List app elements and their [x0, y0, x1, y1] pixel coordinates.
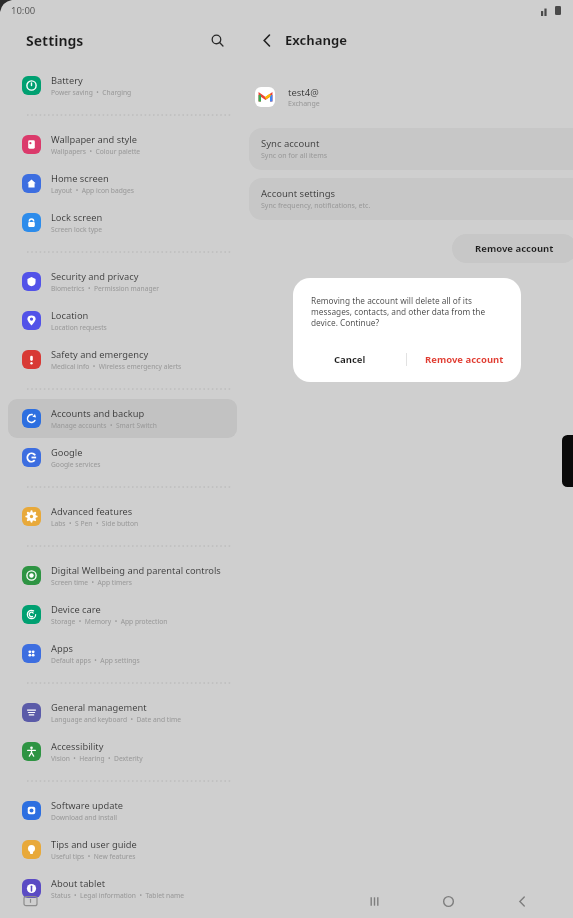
staticText: Download and install — [51, 813, 117, 822]
button[interactable]: test4@ — [255, 80, 573, 114]
staticText: Remove account — [425, 353, 504, 366]
staticText: Home screen — [51, 172, 109, 185]
button[interactable]: Remove account — [452, 234, 573, 263]
button[interactable]: Search — [201, 24, 233, 56]
staticText: Safety and emergency — [51, 348, 149, 361]
staticText: Location requests — [51, 323, 107, 332]
staticText: Sync frequency, notifications, etc. — [261, 201, 371, 211]
staticText: About tablet — [51, 877, 106, 890]
staticText: General management — [51, 701, 147, 714]
staticText: Cancel — [334, 353, 366, 366]
staticText: Device care — [51, 603, 101, 616]
button[interactable]: About tablet — [8, 869, 237, 908]
button[interactable]: Location — [8, 301, 237, 340]
staticText: Useful tips • New features — [51, 852, 136, 861]
staticText: Exchange — [285, 31, 347, 49]
staticText: Accessibility — [51, 740, 104, 753]
button[interactable]: General management — [8, 693, 237, 732]
staticText: Accounts and backup — [51, 407, 145, 420]
button[interactable]: Google — [8, 438, 237, 477]
staticText: Remove account — [475, 242, 554, 255]
button[interactable]: Security and privacy — [8, 262, 237, 301]
staticText: Labs • S Pen • Side button — [51, 519, 139, 528]
staticText: Account settings — [261, 187, 336, 200]
other: Edge panel — [562, 435, 573, 487]
staticText: Layout • App icon badges — [51, 186, 134, 195]
button[interactable]: Digital Wellbeing and parental controls — [8, 556, 237, 595]
button[interactable]: Back — [253, 26, 281, 54]
button[interactable]: Account settings — [249, 178, 573, 220]
staticText: Settings — [26, 31, 84, 50]
staticText: Location — [51, 309, 89, 322]
staticText: Exchange — [288, 99, 320, 109]
staticText: Status • Legal information • Tablet name — [51, 891, 185, 900]
staticText: Sync account — [261, 137, 320, 150]
staticText: Screen time • App timers — [51, 578, 132, 587]
button[interactable]: Safety and emergency — [8, 340, 237, 379]
staticText: Digital Wellbeing and parental controls — [51, 564, 221, 577]
staticText: Google services — [51, 460, 101, 469]
staticText: Wallpaper and style — [51, 133, 137, 146]
staticText: Language and keyboard • Date and time — [51, 715, 181, 724]
button[interactable]: Lock screen — [8, 203, 237, 242]
button[interactable]: Wallpaper and style — [8, 125, 237, 164]
staticText: Removing the account will delete all of … — [311, 295, 505, 328]
button[interactable]: Advanced features — [8, 497, 237, 536]
staticText: Advanced features — [51, 505, 133, 518]
staticText: Google — [51, 446, 83, 459]
staticText: Medical info • Wireless emergency alerts — [51, 362, 182, 371]
button[interactable]: Sync account — [249, 128, 573, 170]
button[interactable]: Remove account — [407, 342, 521, 376]
staticText: Screen lock type — [51, 225, 102, 234]
staticText: Manage accounts • Smart Switch — [51, 421, 157, 430]
button[interactable]: Home screen — [8, 164, 237, 203]
staticText: Lock screen — [51, 211, 103, 224]
staticText: Apps — [51, 642, 73, 655]
button[interactable]: Apps — [8, 634, 237, 673]
button[interactable]: Accounts and backup — [8, 399, 237, 438]
button[interactable]: Software update — [8, 791, 237, 830]
staticText: Battery — [51, 74, 83, 87]
button[interactable]: Back — [485, 884, 559, 918]
button[interactable]: Accessibility — [8, 732, 237, 771]
staticText: Power saving • Charging — [51, 88, 132, 97]
button[interactable]: Screenshot — [0, 884, 60, 918]
staticText: Tips and user guide — [51, 838, 137, 851]
staticText: Security and privacy — [51, 270, 139, 283]
staticText: Storage • Memory • App protection — [51, 617, 168, 626]
staticText: 10:00 — [11, 4, 36, 17]
button[interactable]: Home — [411, 884, 485, 918]
button[interactable]: Recents — [337, 884, 411, 918]
staticText: Vision • Hearing • Dexterity — [51, 754, 143, 763]
staticText: Biometrics • Permission manager — [51, 284, 160, 293]
staticText: Default apps • App settings — [51, 656, 140, 665]
staticText: Sync on for all items — [261, 151, 328, 161]
staticText: test4@ — [288, 86, 319, 99]
button[interactable]: Battery — [8, 66, 237, 105]
button[interactable]: Cancel — [293, 342, 406, 376]
staticText: Software update — [51, 799, 124, 812]
staticText: Wallpapers • Colour palette — [51, 147, 141, 156]
button[interactable]: Device care — [8, 595, 237, 634]
button[interactable]: Tips and user guide — [8, 830, 237, 869]
